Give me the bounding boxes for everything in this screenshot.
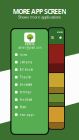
button[interactable]: Recipe — [49, 73, 64, 93]
staticText: Share — [20, 105, 27, 109]
staticText: Popular — [20, 75, 31, 79]
staticText: 🌳 — [26, 34, 34, 41]
button[interactable]: Category — [11, 58, 48, 66]
staticText: Category — [20, 60, 32, 64]
staticText: admin — [25, 42, 35, 46]
button[interactable]: Menu — [50, 36, 54, 40]
button[interactable]: Recipe — [49, 94, 64, 106]
staticText: MORE APP SCREEN — [13, 7, 66, 16]
staticText: Settings — [20, 90, 31, 94]
staticText: admin@gmail.com — [18, 46, 41, 49]
button[interactable]: All Books — [11, 66, 48, 73]
button[interactable]: Recipe — [49, 107, 64, 129]
button[interactable]: Share — [11, 103, 48, 111]
staticText: Bookmark — [20, 83, 32, 86]
button[interactable]: Feedback — [11, 96, 48, 103]
staticText: Shows more applications — [18, 14, 61, 20]
button[interactable]: Search — [58, 36, 62, 40]
button[interactable]: Popular — [11, 73, 48, 81]
button[interactable]: Bookmark — [11, 81, 48, 88]
staticText: Home — [20, 53, 28, 56]
staticText: Rate Apps — [20, 113, 34, 116]
button[interactable]: Settings — [11, 88, 48, 96]
staticText: Feedback — [20, 98, 32, 101]
staticText: All Books — [20, 68, 33, 71]
button[interactable]: Recipe — [49, 44, 64, 72]
button[interactable]: Rate Apps — [11, 111, 48, 118]
button[interactable]: Home — [11, 51, 48, 58]
